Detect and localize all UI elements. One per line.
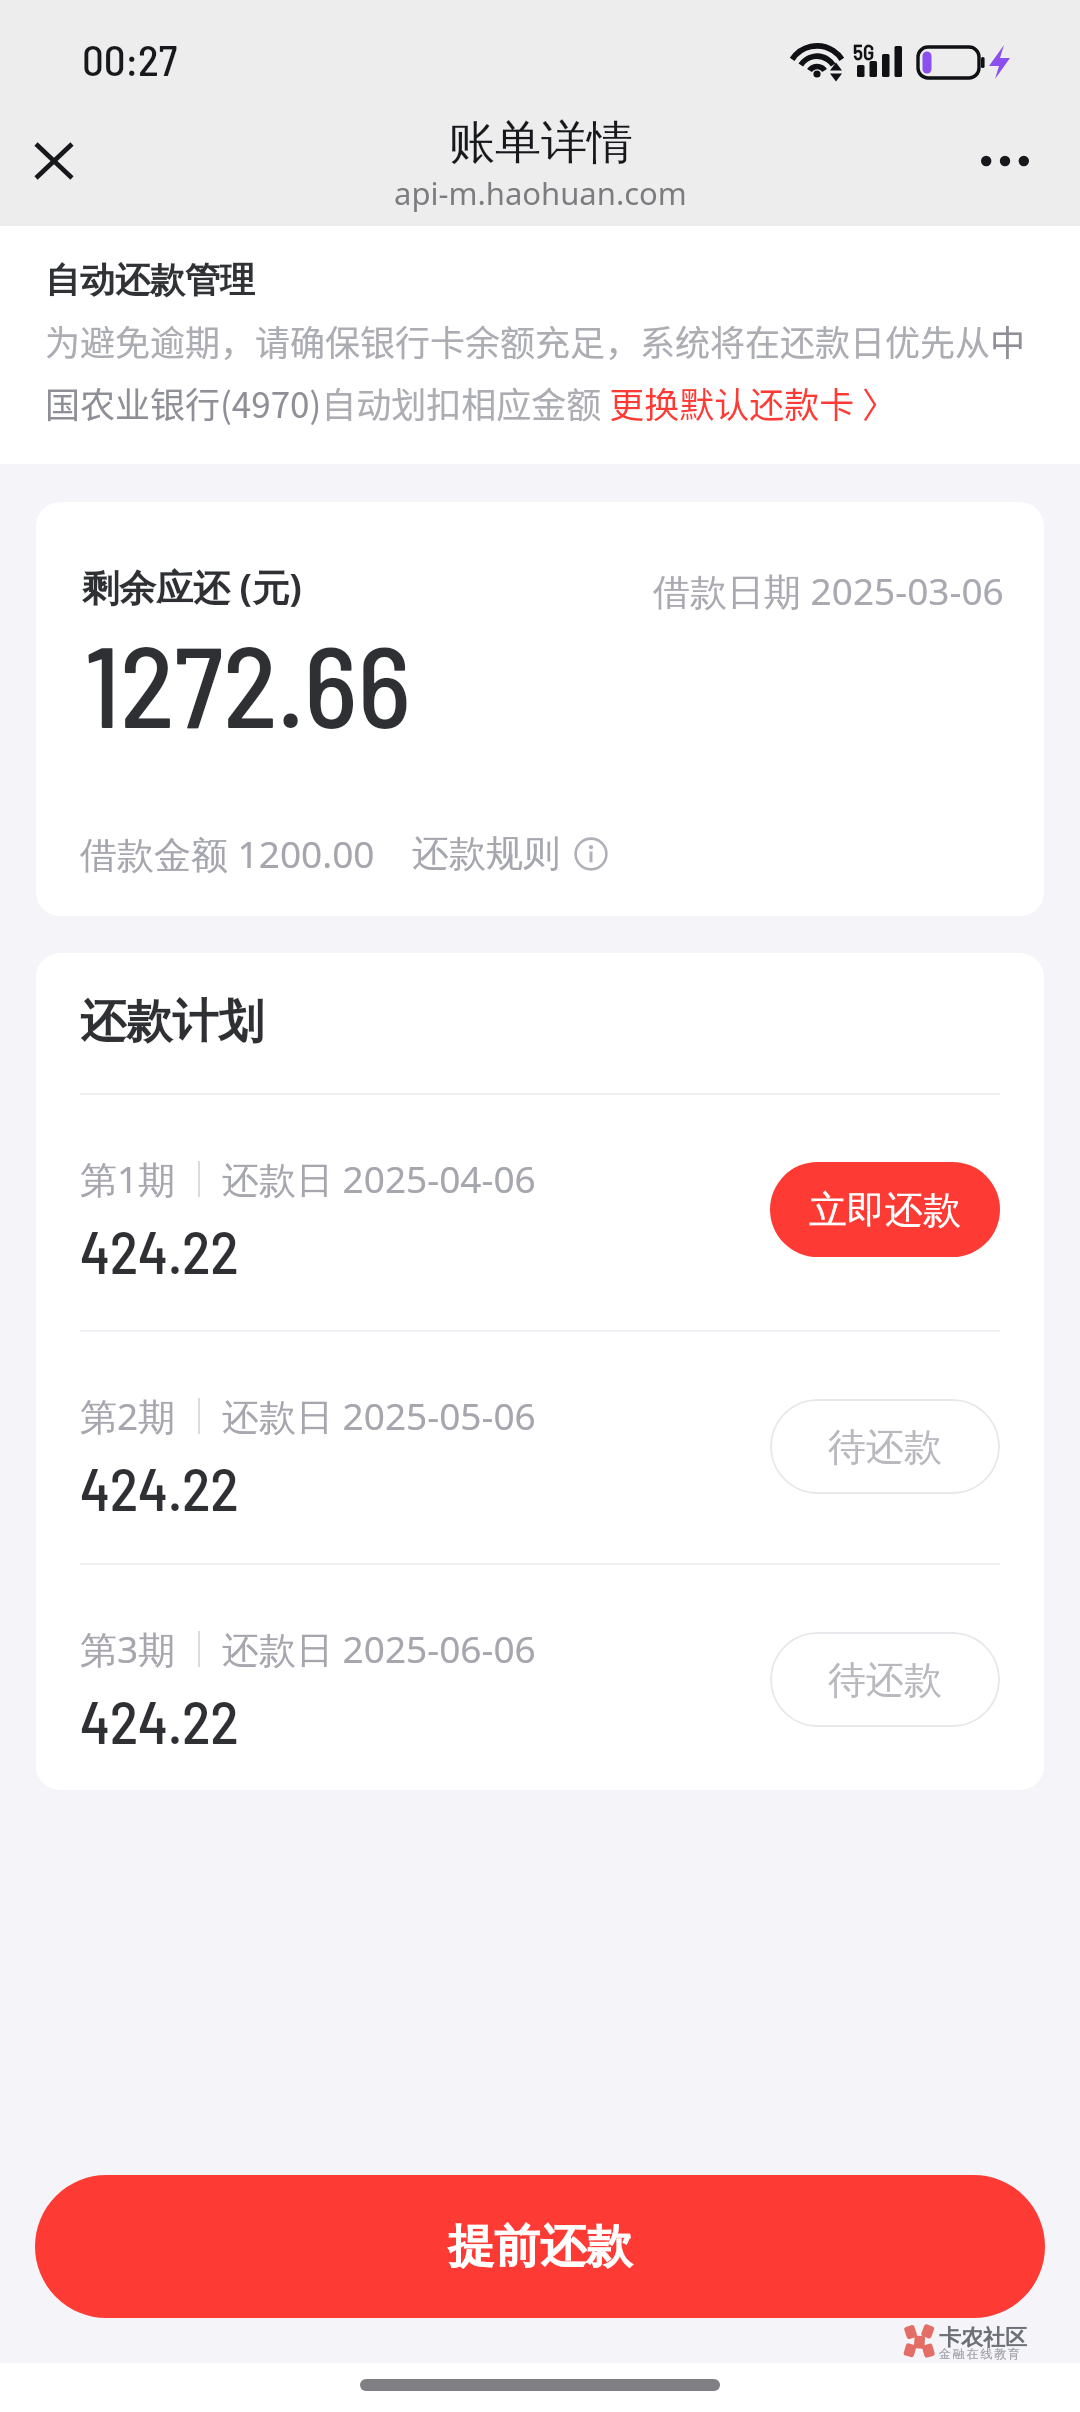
staticText: 第2期 — [80, 1390, 176, 1441]
button[interactable]: 待还款 — [770, 1399, 1000, 1494]
button[interactable]: 立即还款 — [770, 1162, 1000, 1257]
staticText: 借款日期 2025-03-06 — [653, 565, 1004, 616]
button[interactable]: 待还款 — [770, 1632, 1000, 1727]
staticText: 还款日 2025-04-06 — [222, 1153, 536, 1204]
staticText: 还款计划 — [80, 993, 264, 1051]
staticText: 剩余应还 (元) — [82, 561, 302, 612]
staticText: 立即还款 — [809, 1186, 961, 1234]
staticText: 424.22 — [80, 1215, 239, 1286]
staticText: 卡农社区 — [939, 2324, 1027, 2352]
staticText: api-m.haohuan.com — [394, 172, 687, 214]
staticText: 待还款 — [828, 1656, 942, 1704]
staticText: 提前还款 — [448, 2218, 632, 2276]
staticText: 第1期 — [80, 1153, 176, 1204]
staticText: 00:27 — [82, 33, 178, 85]
button[interactable]: Close — [18, 125, 90, 197]
staticText: 第3期 — [80, 1623, 176, 1674]
staticText: 为避免逾期，请确保银行卡余额充足，系统将在还款日优先从中国农业银行(4970)自… — [45, 315, 1035, 429]
staticText: 还款日 2025-05-06 — [222, 1390, 536, 1441]
staticText: 待还款 — [828, 1423, 942, 1471]
staticText: 还款规则 — [412, 830, 560, 877]
staticText: 1272.66 — [85, 615, 411, 751]
button[interactable]: 提前还款 — [35, 2175, 1045, 2318]
staticText: 账单详情 — [449, 114, 633, 172]
staticText: 424.22 — [80, 1685, 239, 1756]
button[interactable]: 还款规则 — [412, 830, 608, 877]
staticText: 5G — [853, 39, 875, 64]
staticText: 424.22 — [80, 1452, 239, 1523]
staticText: 金融在线教育 — [939, 2346, 1022, 2361]
staticText: 还款日 2025-06-06 — [222, 1623, 536, 1674]
staticText: 借款金额 1200.00 — [80, 828, 375, 879]
staticText: 自动还款管理 — [45, 258, 255, 302]
button[interactable]: More options — [966, 125, 1044, 197]
